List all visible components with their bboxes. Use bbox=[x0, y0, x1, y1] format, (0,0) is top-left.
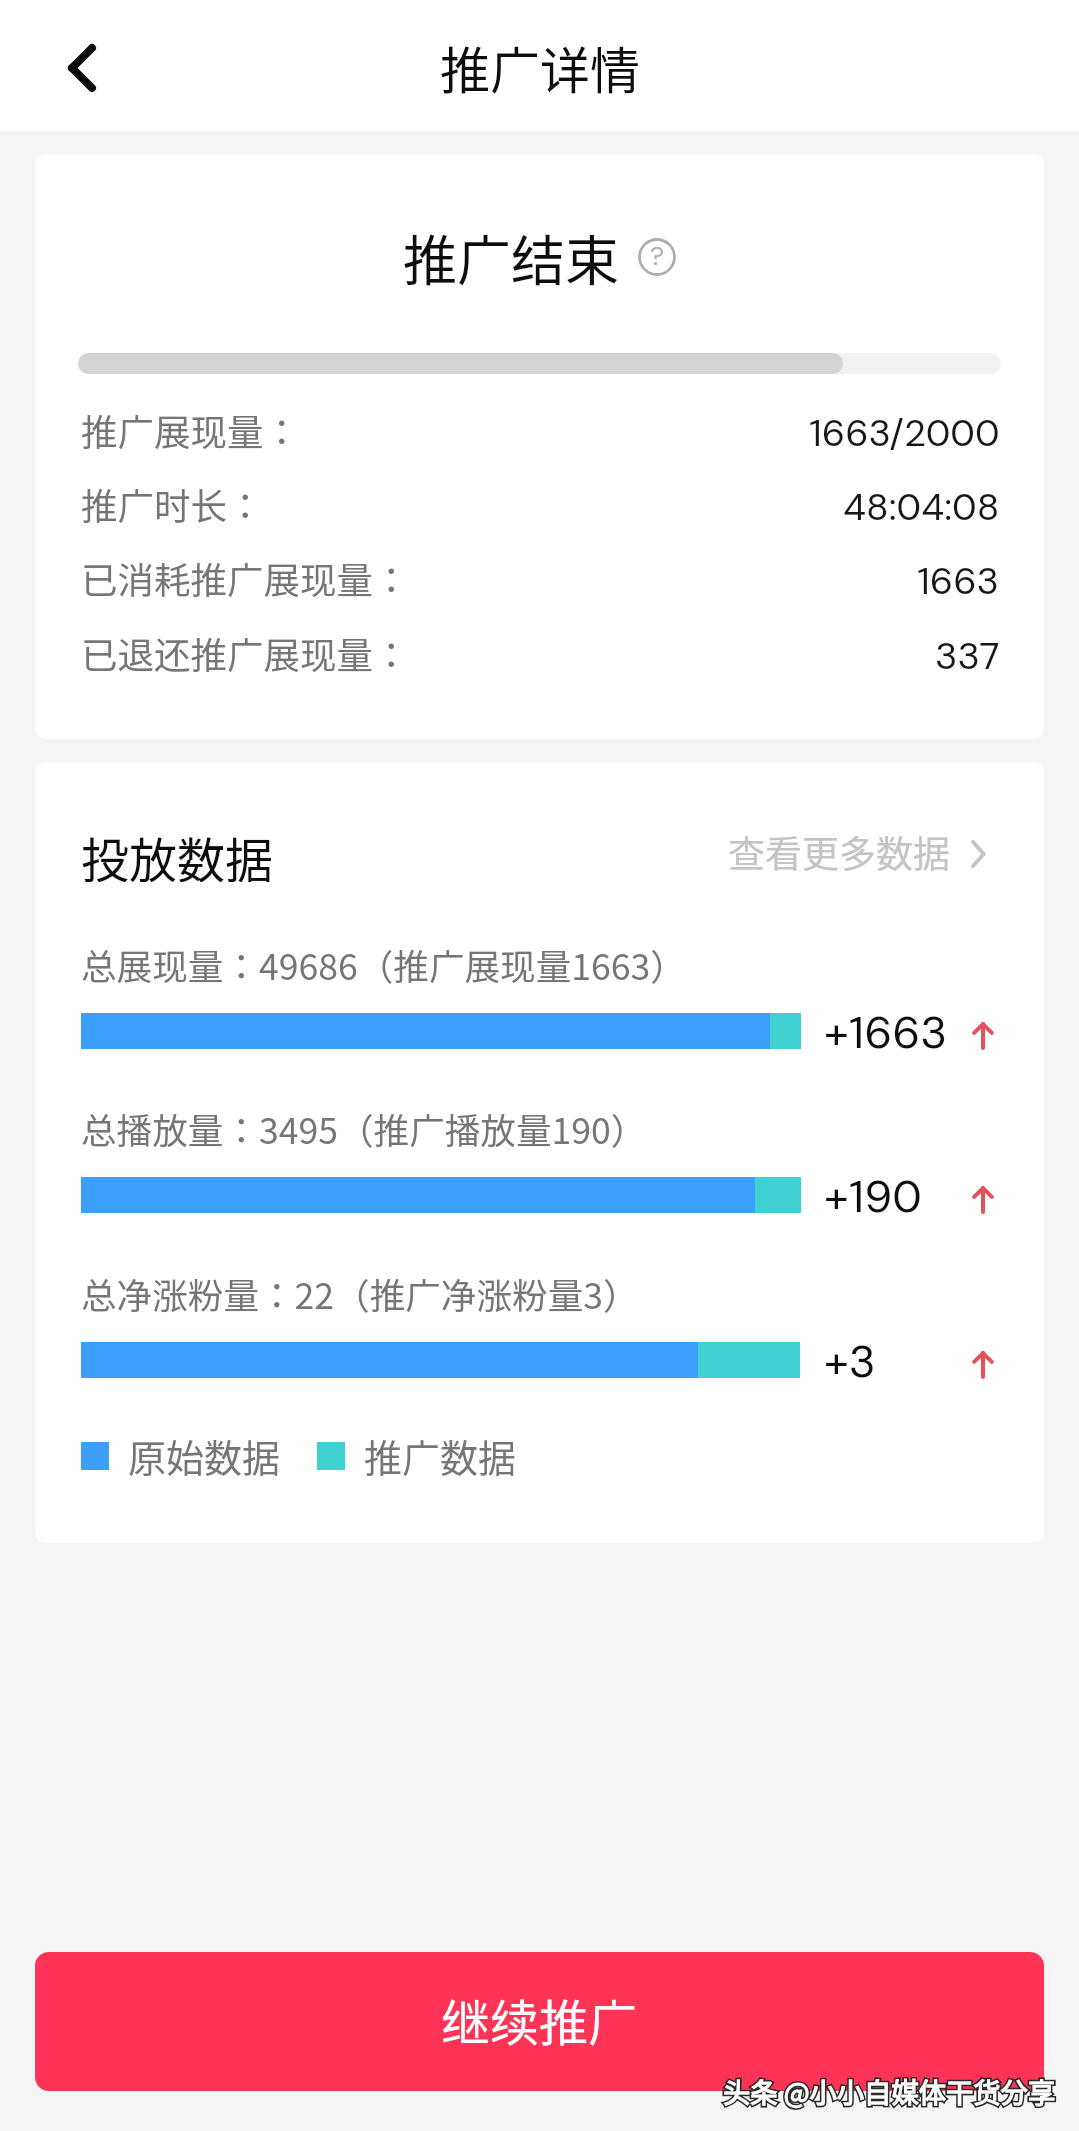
staticText: 头条 @小小自媒体干货分享 bbox=[723, 2071, 1056, 2111]
button[interactable]: Back bbox=[42, 28, 122, 108]
button[interactable]: 继续推广 bbox=[35, 1952, 1044, 2091]
staticText: 总播放量：3495（推广播放量190） bbox=[81, 1103, 647, 1155]
staticText: 投放数据 bbox=[81, 822, 274, 882]
staticText: 1663 bbox=[917, 557, 1000, 605]
staticText: 推广结束 bbox=[403, 218, 619, 296]
staticText: 头条 @小小自媒体干货分享 bbox=[723, 2071, 1056, 2111]
staticText: 推广详情 bbox=[440, 31, 640, 103]
staticText: 查看更多数据 bbox=[728, 825, 950, 873]
staticText: 1663/2000 bbox=[809, 409, 1000, 457]
staticText: +3 bbox=[824, 1332, 876, 1391]
staticText: 总展现量：49686（推广展现量1663） bbox=[81, 939, 686, 991]
staticText: 推广时长： bbox=[81, 478, 264, 526]
staticText: 已消耗推广展现量： bbox=[81, 552, 410, 600]
button[interactable]: 查看更多数据 bbox=[728, 819, 992, 879]
staticText: 总净涨粉量：22（推广净涨粉量3） bbox=[81, 1268, 639, 1320]
staticText: 原始数据 bbox=[128, 1428, 281, 1483]
staticText: 继续推广 bbox=[441, 1984, 638, 2055]
staticText: 337 bbox=[935, 632, 1000, 680]
staticText: 已退还推广展现量： bbox=[81, 627, 410, 675]
staticText: 推广数据 bbox=[364, 1428, 517, 1483]
button[interactable]: Help bbox=[637, 237, 677, 277]
staticText: 推广展现量： bbox=[81, 404, 300, 452]
staticText: +190 bbox=[824, 1167, 922, 1226]
staticText: +1663 bbox=[824, 1003, 948, 1062]
staticText: 48:04:08 bbox=[843, 483, 1000, 531]
staticText: ? bbox=[650, 239, 665, 273]
